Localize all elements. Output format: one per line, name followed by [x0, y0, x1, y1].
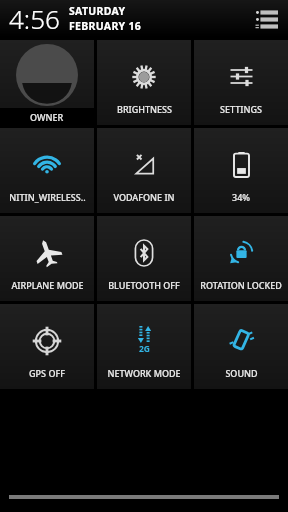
button[interactable]: Quick settings	[249, 2, 283, 36]
button[interactable]: BRIGHTNESS	[97, 40, 191, 125]
button[interactable]: 34%	[194, 128, 288, 213]
staticText: 34%	[232, 191, 250, 203]
staticText: FEBRUARY 16	[69, 19, 142, 33]
button[interactable]: NITIN_WIRELESS..	[0, 128, 94, 213]
button[interactable]: 2G	[97, 304, 191, 389]
staticText: GPS OFF	[29, 367, 65, 379]
button[interactable]: SETTINGS	[194, 40, 288, 125]
staticText: 4:56	[9, 1, 60, 36]
button[interactable]: GPS OFF	[0, 304, 94, 389]
staticText: NITIN_WIRELESS..	[9, 191, 86, 203]
staticText: BLUETOOTH OFF	[108, 279, 180, 291]
staticText: 2G	[139, 343, 151, 355]
staticText: AIRPLANE MODE	[11, 279, 84, 291]
staticText: BRIGHTNESS	[117, 103, 172, 115]
button[interactable]: SOUND	[194, 304, 288, 389]
staticText: NETWORK MODE	[107, 367, 181, 379]
button[interactable]: BLUETOOTH OFF	[97, 216, 191, 301]
staticText: SOUND	[225, 367, 258, 379]
staticText: SATURDAY	[69, 4, 126, 18]
button[interactable]: VODAFONE IN	[97, 128, 191, 213]
staticText: ROTATION LOCKED	[200, 279, 282, 291]
button[interactable]: ROTATION LOCKED	[194, 216, 288, 301]
staticText: SETTINGS	[220, 103, 262, 115]
button[interactable]: OWNER	[0, 40, 94, 125]
button[interactable]: AIRPLANE MODE	[0, 216, 94, 301]
staticText: OWNER	[30, 111, 64, 123]
staticText: VODAFONE IN	[113, 191, 175, 203]
